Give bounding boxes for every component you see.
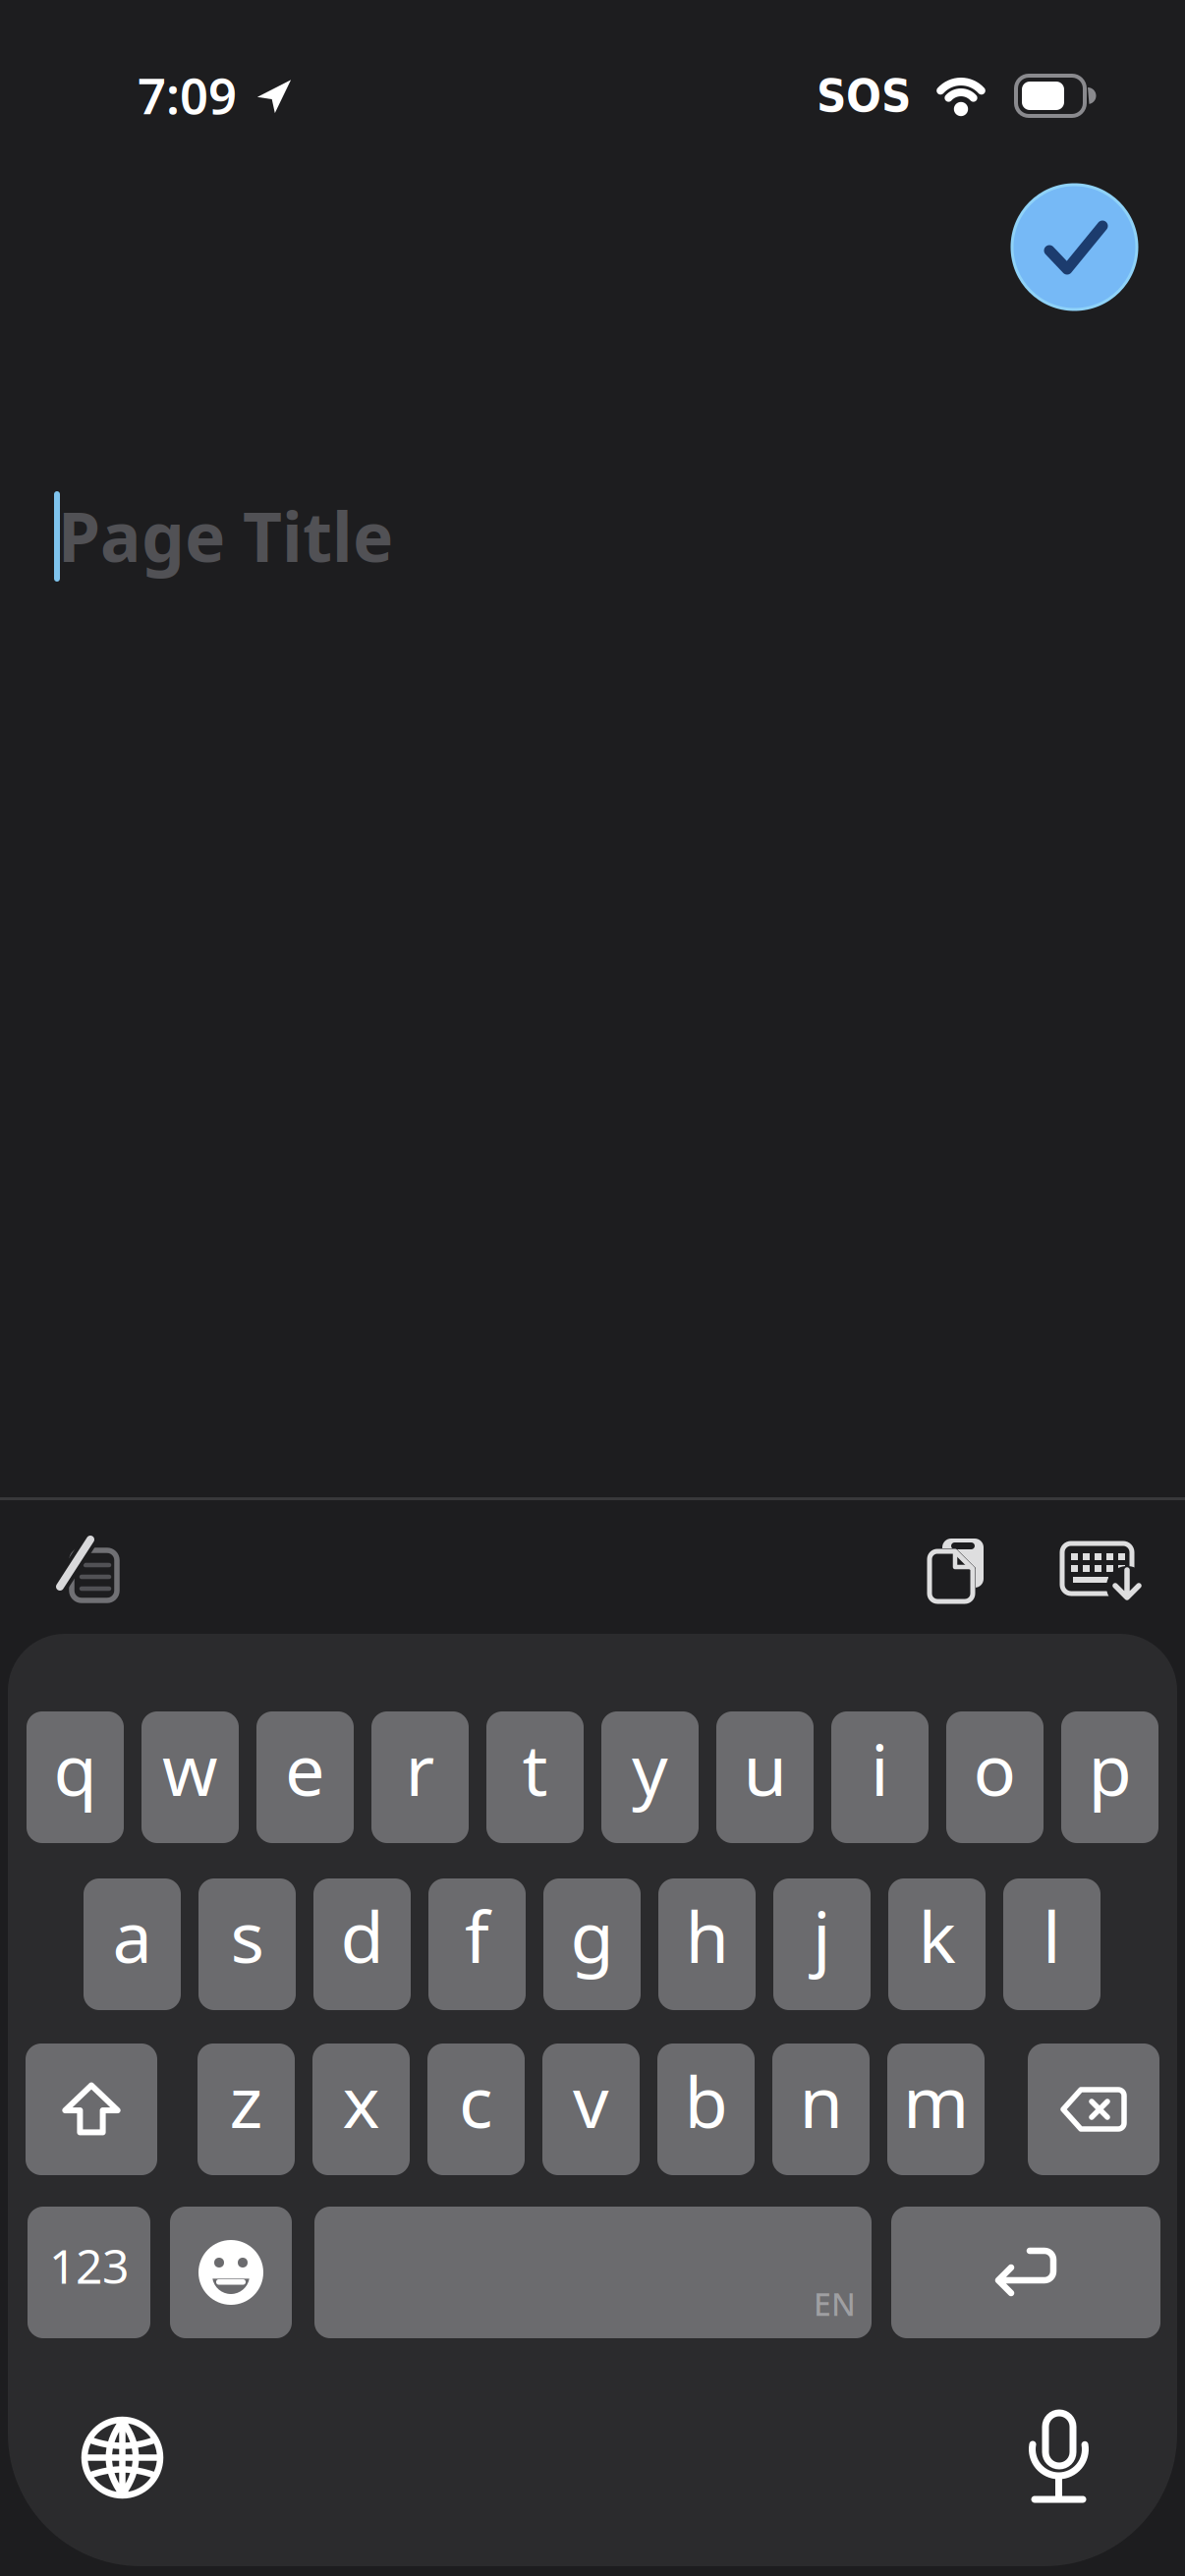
button[interactable]: Next Keyboard — [84, 2419, 161, 2496]
button[interactable]: x — [312, 2044, 410, 2175]
button[interactable]: b — [657, 2044, 755, 2175]
button[interactable]: h — [658, 1878, 756, 2010]
staticText: v — [573, 2054, 609, 2147]
staticText: k — [918, 1888, 956, 1982]
button[interactable]: c — [427, 2044, 525, 2175]
button[interactable]: q — [27, 1711, 124, 1843]
staticText: q — [54, 1721, 97, 1815]
staticText: SOS — [817, 69, 911, 123]
button[interactable]: d — [313, 1878, 411, 2010]
staticText: u — [743, 1721, 787, 1815]
staticText: f — [465, 1888, 489, 1982]
button[interactable]: w — [141, 1711, 239, 1843]
button[interactable]: Emoji — [170, 2207, 292, 2338]
staticText: EN — [814, 2283, 856, 2324]
staticText: l — [1043, 1888, 1061, 1982]
button[interactable]: e — [256, 1711, 354, 1843]
button[interactable]: g — [543, 1878, 641, 2010]
staticText: d — [340, 1888, 384, 1982]
button[interactable]: m — [887, 2044, 985, 2175]
button[interactable]: j — [773, 1878, 871, 2010]
staticText: w — [162, 1721, 218, 1815]
staticText: o — [973, 1721, 1016, 1815]
staticText: a — [113, 1888, 152, 1982]
button[interactable]: r — [371, 1711, 469, 1843]
staticText: s — [230, 1888, 264, 1982]
button[interactable]: l — [1003, 1878, 1100, 2010]
button[interactable]: Dismiss Keyboard — [1062, 1540, 1145, 1604]
button[interactable]: p — [1061, 1711, 1158, 1843]
staticText: j — [813, 1888, 831, 1982]
button[interactable]: u — [716, 1711, 814, 1843]
button[interactable]: Shift — [26, 2044, 157, 2175]
staticText: m — [903, 2054, 969, 2147]
button[interactable]: Done — [1012, 185, 1137, 309]
button[interactable]: Dictation — [1022, 2413, 1096, 2504]
button[interactable]: Space — [314, 2207, 872, 2338]
button[interactable]: t — [486, 1711, 584, 1843]
staticText: z — [229, 2054, 263, 2147]
staticText: 7:09 — [138, 62, 237, 128]
staticText: c — [459, 2054, 493, 2147]
staticText: g — [570, 1888, 614, 1982]
button[interactable]: Return — [891, 2207, 1160, 2338]
button[interactable]: v — [542, 2044, 640, 2175]
staticText: r — [405, 1721, 435, 1815]
button[interactable]: k — [888, 1878, 986, 2010]
button[interactable]: y — [601, 1711, 699, 1843]
staticText: e — [285, 1721, 325, 1815]
staticText: i — [871, 1721, 889, 1815]
button[interactable]: a — [84, 1878, 181, 2010]
button[interactable]: Numbers — [28, 2207, 150, 2338]
staticText: n — [799, 2054, 843, 2147]
staticText: p — [1088, 1721, 1131, 1815]
button[interactable]: z — [197, 2044, 295, 2175]
button[interactable]: f — [428, 1878, 526, 2010]
button[interactable]: n — [772, 2044, 870, 2175]
staticText: t — [522, 1721, 548, 1815]
staticText: h — [685, 1888, 729, 1982]
button[interactable]: s — [198, 1878, 296, 2010]
button[interactable]: Paste — [930, 1539, 985, 1603]
staticText: x — [342, 2054, 380, 2147]
button[interactable]: Handwriting — [60, 1533, 129, 1611]
staticText: Page Title — [58, 490, 393, 581]
button[interactable]: Delete — [1028, 2044, 1159, 2175]
staticText: b — [684, 2054, 728, 2147]
button[interactable]: i — [831, 1711, 929, 1843]
staticText: 123 — [49, 2234, 129, 2297]
staticText: y — [632, 1721, 668, 1815]
button[interactable]: o — [946, 1711, 1044, 1843]
